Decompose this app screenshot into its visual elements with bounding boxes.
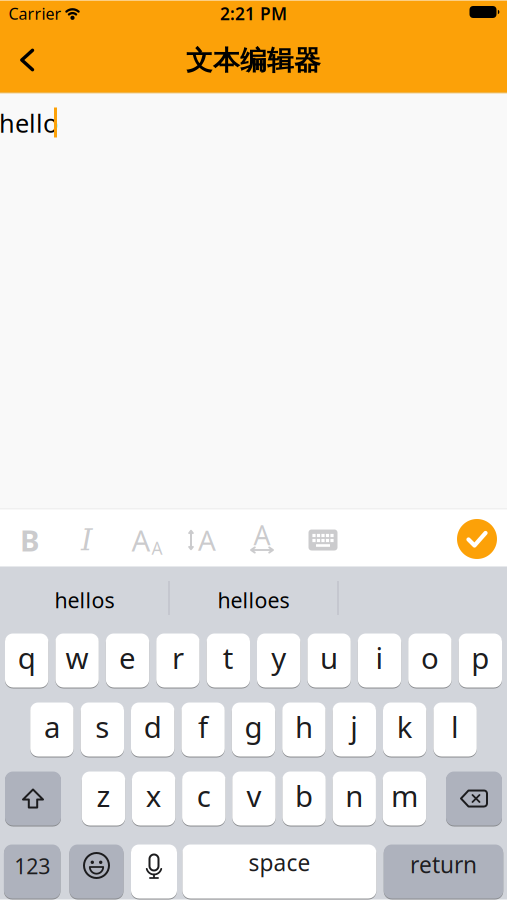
button[interactable]: v <box>232 771 276 826</box>
button[interactable]: o <box>408 633 452 688</box>
button[interactable]: Done <box>457 519 497 559</box>
staticText: r <box>172 638 184 677</box>
button[interactable]: h <box>282 702 326 757</box>
staticText: c <box>197 776 211 815</box>
button[interactable]: w <box>55 633 99 688</box>
button[interactable]: p <box>459 633 502 688</box>
button[interactable]: d <box>131 702 174 757</box>
staticText: l <box>451 707 459 746</box>
staticText: u <box>320 638 338 677</box>
staticText: d <box>144 707 162 746</box>
button[interactable]: e <box>106 633 149 688</box>
staticText: A <box>131 520 150 559</box>
button[interactable]: n <box>333 771 376 826</box>
button[interactable]: f <box>181 702 225 757</box>
staticText: hellos <box>54 586 114 614</box>
staticText: q <box>18 638 36 677</box>
button[interactable]: Italic <box>65 518 109 562</box>
button[interactable]: return <box>384 844 503 899</box>
staticText: x <box>146 776 162 815</box>
button[interactable]: r <box>156 633 200 688</box>
staticText: k <box>397 707 413 746</box>
staticText: e <box>119 638 136 677</box>
button[interactable]: l <box>433 702 477 757</box>
button[interactable]: k <box>383 702 426 757</box>
button[interactable]: a <box>30 702 74 757</box>
staticText: y <box>271 638 286 677</box>
staticText: A <box>151 536 162 559</box>
button[interactable]: Line spacing <box>180 518 224 562</box>
staticText: 123 <box>14 852 50 880</box>
staticText: I <box>81 523 93 557</box>
button[interactable]: Delete <box>446 771 502 826</box>
button[interactable]: m <box>383 771 426 826</box>
staticText: w <box>66 638 89 677</box>
staticText: 文本编辑器 <box>186 44 321 77</box>
staticText: f <box>198 707 208 746</box>
button[interactable]: u <box>307 633 351 688</box>
staticText: return <box>410 849 477 879</box>
staticText: A <box>253 517 270 553</box>
button[interactable]: j <box>333 702 376 757</box>
staticText: z <box>96 776 110 815</box>
staticText: B <box>20 520 40 559</box>
staticText: m <box>391 776 418 815</box>
button[interactable]: Hide keyboard <box>301 518 345 562</box>
staticText: b <box>295 776 313 815</box>
staticText: A <box>198 521 216 559</box>
button[interactable]: Back <box>7 40 47 80</box>
button[interactable]: Emoji <box>69 844 123 899</box>
staticText: n <box>345 776 363 815</box>
staticText: h <box>295 707 313 746</box>
staticText: hello <box>0 106 58 140</box>
staticText: Carrier <box>8 3 61 24</box>
staticText: p <box>471 638 489 677</box>
button[interactable]: Bold <box>8 518 52 562</box>
button[interactable]: b <box>282 771 326 826</box>
button[interactable]: c <box>182 771 225 826</box>
staticText: a <box>44 707 60 746</box>
button[interactable]: q <box>5 633 48 688</box>
staticText: s <box>95 707 109 746</box>
staticText: t <box>223 638 234 677</box>
button[interactable]: helloes <box>173 576 333 624</box>
staticText: 2:21 PM <box>220 2 287 25</box>
staticText: i <box>375 638 383 677</box>
button[interactable]: space <box>182 844 376 899</box>
button[interactable]: hellos <box>4 576 164 624</box>
button[interactable]: x <box>132 771 175 826</box>
staticText: j <box>350 707 358 746</box>
button[interactable]: s <box>81 702 124 757</box>
staticText: v <box>246 776 261 815</box>
button[interactable]: Letter spacing <box>240 519 284 563</box>
staticText: helloes <box>217 586 289 614</box>
button[interactable]: g <box>232 702 275 757</box>
button[interactable]: i <box>358 633 401 688</box>
staticText: space <box>248 847 310 877</box>
button[interactable]: Font size <box>125 518 169 562</box>
button[interactable]: z <box>82 771 125 826</box>
button[interactable]: Shift <box>5 771 61 826</box>
button[interactable]: t <box>207 633 250 688</box>
button[interactable]: Dictate <box>131 844 177 899</box>
button[interactable]: Numbers <box>4 844 60 899</box>
staticText: g <box>244 707 262 746</box>
staticText: o <box>421 638 439 677</box>
button[interactable]: y <box>257 633 300 688</box>
